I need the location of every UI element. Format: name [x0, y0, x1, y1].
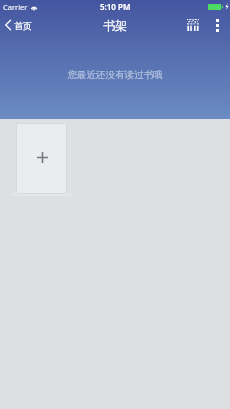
button[interactable]: Scan QR code [183, 15, 203, 35]
staticText: 您最近还没有读过书哦 [0, 69, 230, 81]
staticText: 首页 [14, 20, 32, 31]
button[interactable]: More options [208, 16, 226, 34]
button[interactable]: Add book [16, 123, 67, 194]
staticText: 5:10 PM [100, 1, 131, 12]
staticText: Carrier [3, 2, 28, 12]
staticText: 书架 [103, 18, 127, 33]
button[interactable]: 首页 [3, 16, 33, 34]
